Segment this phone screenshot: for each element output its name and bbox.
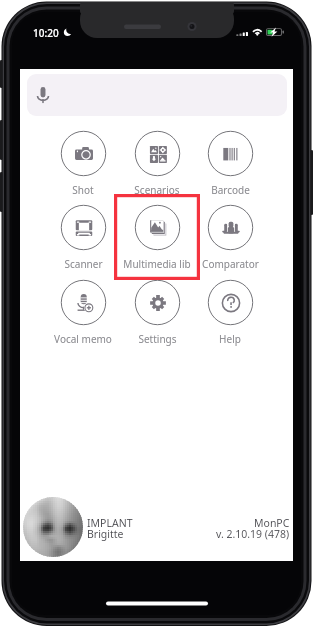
staticText: Scenarios — [134, 183, 180, 197]
staticText: Help — [219, 332, 241, 346]
staticText: Comparator — [202, 257, 259, 271]
button[interactable]: Comparator — [187, 196, 273, 282]
button[interactable]: Multimedia lib — [114, 196, 200, 282]
button[interactable]: Scenarios — [114, 122, 200, 208]
staticText: IMPLANT — [87, 516, 133, 530]
button[interactable]: Vocal memo — [40, 271, 126, 357]
staticText: MonPC — [254, 516, 290, 530]
staticText: Scanner — [64, 257, 103, 271]
staticText: Barcode — [211, 183, 250, 197]
button[interactable]: Scanner — [40, 196, 126, 282]
staticText: Shot — [72, 183, 94, 197]
staticText: Multimedia lib — [123, 257, 191, 271]
staticText: v. 2.10.19 (478) — [216, 527, 290, 541]
staticText: Vocal memo — [54, 332, 112, 346]
staticText: Settings — [138, 332, 177, 346]
staticText: 10:20 — [33, 26, 59, 40]
button[interactable]: Settings — [114, 271, 200, 357]
button[interactable]: Barcode — [187, 122, 273, 208]
button[interactable]: Shot — [40, 122, 126, 208]
staticText: Brigitte — [87, 527, 124, 541]
button[interactable]: Voice search — [27, 74, 287, 116]
button[interactable]: Help — [187, 271, 273, 357]
